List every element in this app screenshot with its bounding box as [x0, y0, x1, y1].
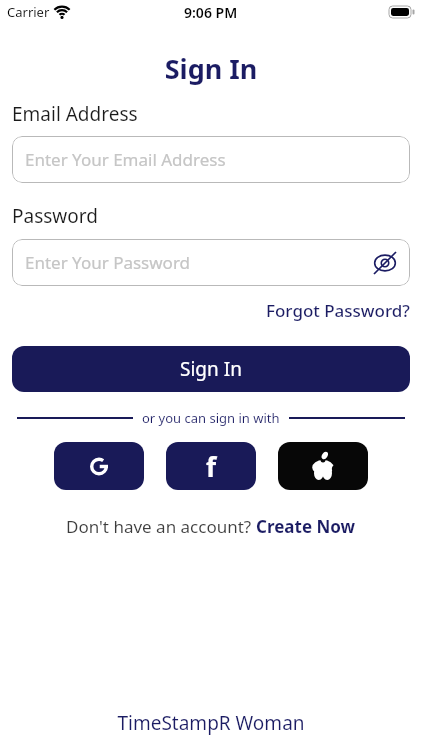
staticText: Carrier	[7, 3, 50, 21]
button[interactable]: Enter Your Password	[12, 239, 410, 286]
staticText: Enter Your Password	[25, 251, 191, 274]
button[interactable]: Don't have an account?	[66, 515, 356, 538]
button[interactable]: Sign In	[12, 346, 410, 392]
staticText: TimeStampR Woman	[0, 710, 422, 736]
staticText: Create Now	[256, 515, 356, 538]
button[interactable]	[278, 442, 368, 490]
staticText: Enter Your Email Address	[25, 148, 226, 171]
button[interactable]	[54, 442, 144, 490]
staticText: f	[206, 449, 217, 484]
staticText: Sign In	[180, 356, 242, 382]
staticText: Password	[12, 203, 98, 229]
staticText: or you can sign in with	[142, 409, 280, 427]
staticText: Don't have an account?	[66, 515, 256, 538]
button[interactable]: Forgot Password?	[266, 299, 410, 322]
staticText: Sign In	[0, 50, 422, 87]
button[interactable]: Enter Your Email Address	[12, 136, 410, 183]
button[interactable]: f	[166, 442, 256, 490]
staticText: Email Address	[12, 101, 138, 127]
staticText: 9:06 PM	[184, 3, 238, 22]
